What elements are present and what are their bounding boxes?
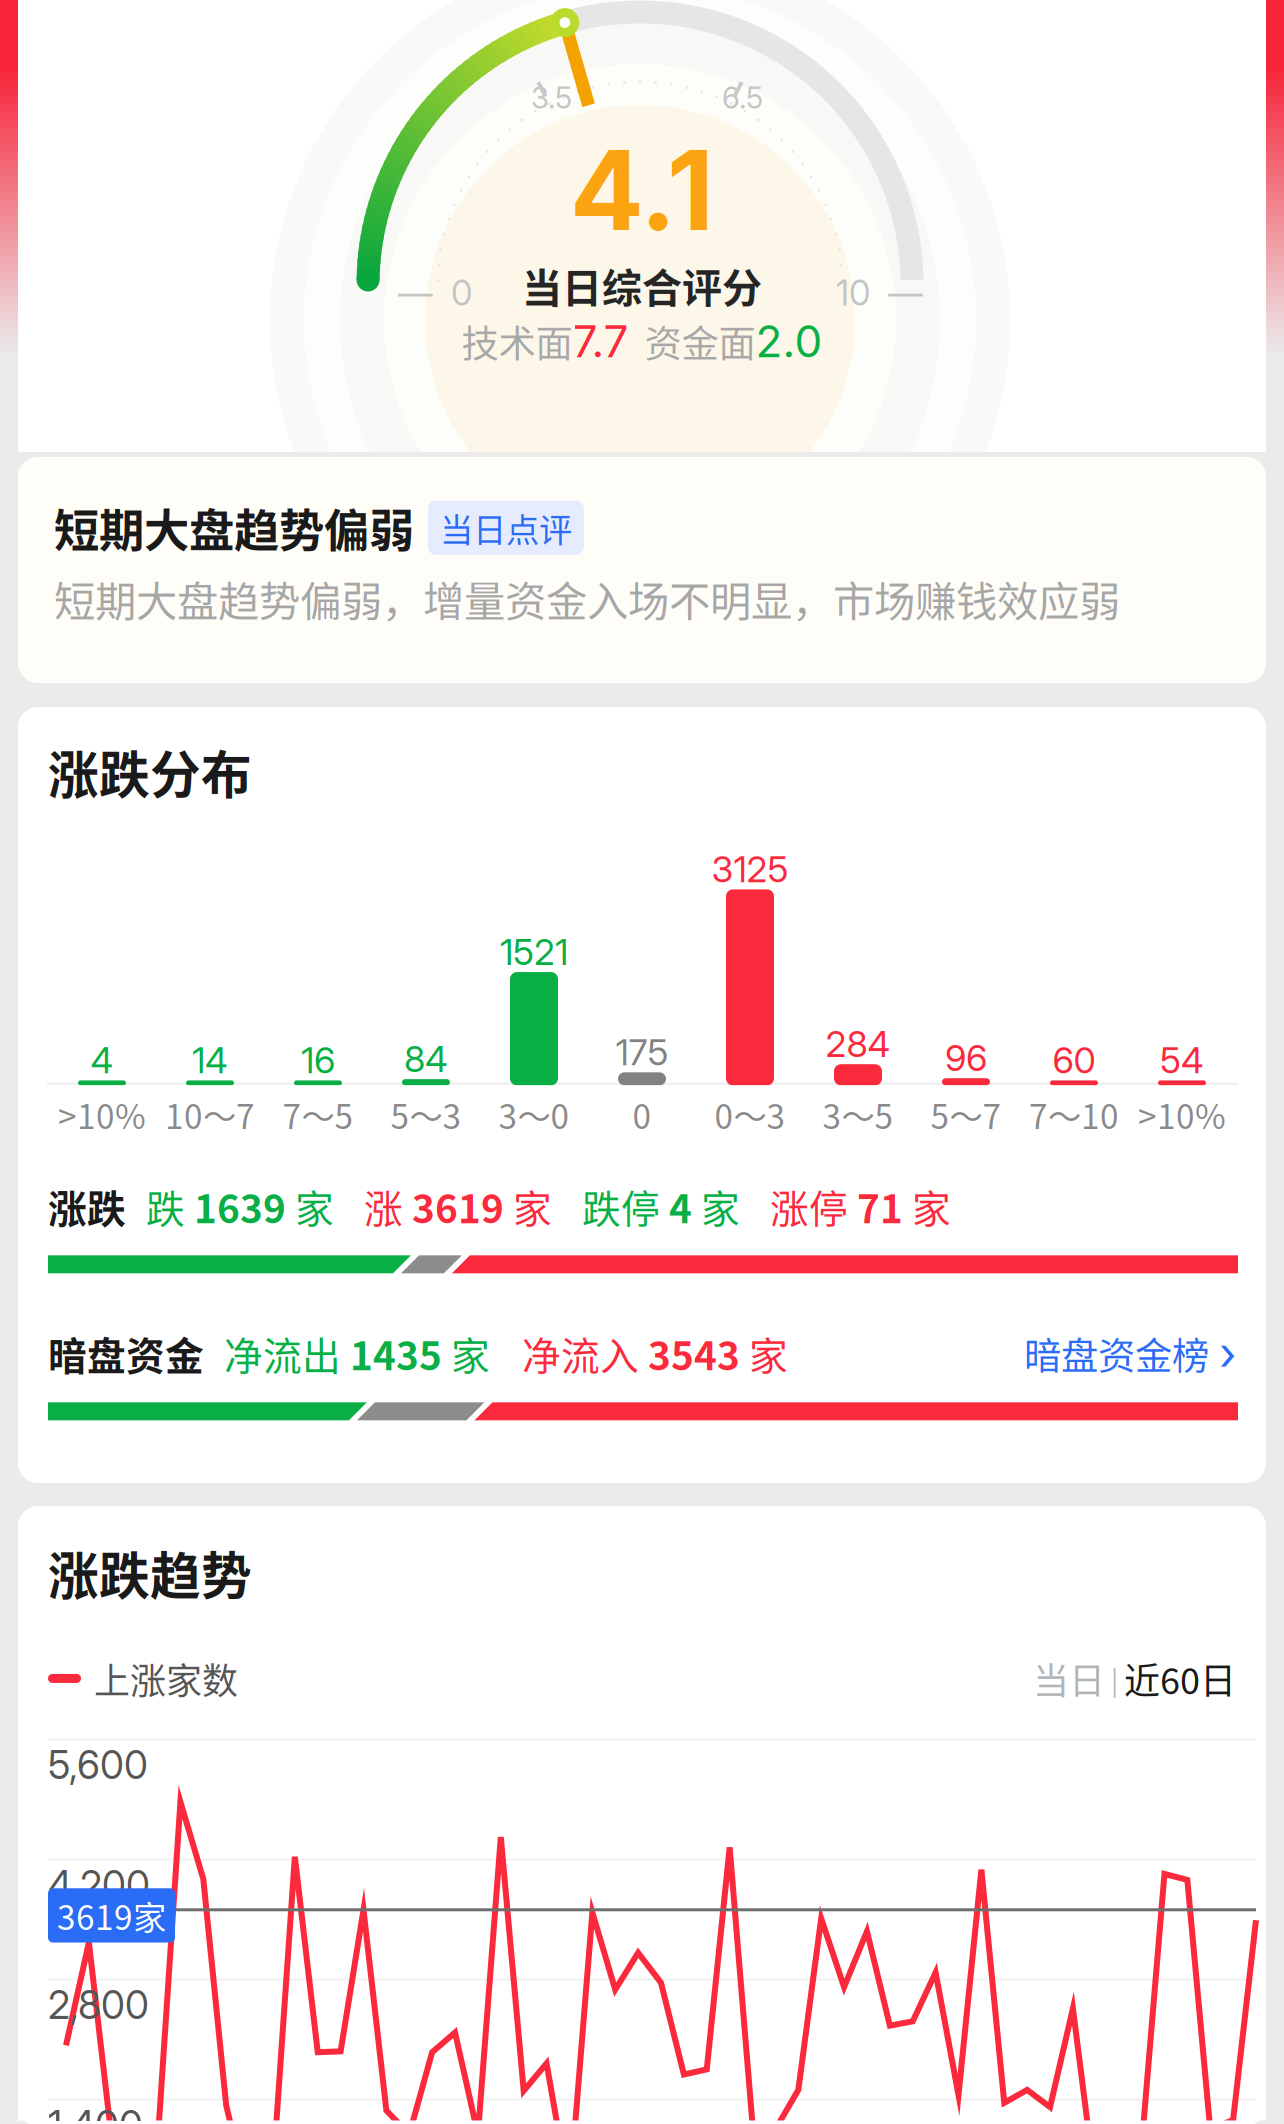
staticText: 家 <box>513 1178 552 1234</box>
button[interactable]: 暗盘资金榜 <box>1024 1326 1236 1381</box>
staticText: 技术面 <box>461 314 572 368</box>
staticText: 家 <box>295 1178 334 1234</box>
staticText: 5～7 <box>930 1090 1001 1139</box>
staticText: 跌停 <box>582 1178 660 1234</box>
staticText: — 0 <box>398 272 472 314</box>
staticText: 净流出 <box>224 1325 341 1381</box>
staticText: 1521 <box>500 930 568 974</box>
staticText: 3～5 <box>822 1090 893 1139</box>
staticText: 涨停 <box>770 1178 848 1234</box>
staticText: 涨跌 <box>48 1178 126 1234</box>
staticText: 上涨家数 <box>94 1652 238 1704</box>
staticText: 当日综合评分 <box>522 256 762 314</box>
staticText: 家 <box>451 1325 490 1381</box>
staticText: 5,600 <box>48 1741 148 1788</box>
button[interactable]: 近60日 <box>1124 1652 1236 1704</box>
staticText: 3543 <box>639 1325 749 1381</box>
staticText: 7.7 <box>572 315 628 368</box>
staticText: 284 <box>825 1022 890 1066</box>
staticText: 71 <box>848 1178 912 1234</box>
staticText: 0～3 <box>714 1090 785 1139</box>
staticText: 54 <box>1160 1038 1204 1082</box>
staticText: 跌 <box>146 1178 185 1234</box>
staticText: | <box>1105 1659 1124 1698</box>
staticText: 3619家 <box>57 1891 166 1940</box>
staticText: 涨跌趋势 <box>48 1536 252 1609</box>
staticText: 1435 <box>341 1325 451 1381</box>
staticText: 175 <box>615 1030 668 1074</box>
staticText: 3～0 <box>498 1090 569 1139</box>
staticText: 96 <box>945 1036 987 1080</box>
staticText: 7～5 <box>282 1090 353 1139</box>
staticText: 涨 <box>364 1178 403 1234</box>
staticText: 10 — <box>836 272 923 314</box>
staticText: 家 <box>749 1325 788 1381</box>
staticText: 6.5 <box>722 80 763 115</box>
staticText: 16 <box>301 1038 335 1082</box>
staticText: 短期大盘趋势偏弱 <box>54 495 414 561</box>
staticText: 暗盘资金 <box>48 1325 204 1381</box>
staticText: 涨跌分布 <box>48 735 252 808</box>
staticText: >10% <box>1138 1090 1226 1139</box>
staticText: 3.5 <box>531 80 572 115</box>
staticText: 4.1 <box>570 124 714 256</box>
staticText: 10～7 <box>165 1090 255 1139</box>
staticText: 当日点评 <box>440 504 572 552</box>
staticText: 4 <box>90 1038 113 1082</box>
staticText: 3619 <box>403 1178 513 1234</box>
staticText: 4,200 <box>48 1861 150 1908</box>
staticText: 1,400 <box>48 2101 143 2124</box>
staticText: >10% <box>58 1090 146 1139</box>
staticText: 2.0 <box>755 315 822 368</box>
staticText: 84 <box>404 1037 448 1081</box>
staticText: › <box>1219 1326 1236 1381</box>
staticText: 净流入 <box>522 1325 639 1381</box>
staticText: 当日 <box>1033 1652 1105 1704</box>
staticText: 家 <box>912 1178 951 1234</box>
button[interactable]: 当日 <box>1033 1652 1105 1704</box>
staticText: 1639 <box>185 1178 295 1234</box>
staticText: 短期大盘趋势偏弱，增量资金入场不明显，市场赚钱效应弱 <box>54 569 1120 628</box>
staticText: 暗盘资金榜 <box>1024 1326 1209 1380</box>
staticText: 近60日 <box>1124 1652 1236 1704</box>
staticText: 60 <box>1052 1038 1095 1082</box>
staticText: 14 <box>192 1038 228 1082</box>
staticText: 3125 <box>711 847 788 891</box>
staticText: 7～10 <box>1029 1090 1119 1139</box>
staticText: 家 <box>701 1178 740 1234</box>
staticText: 4 <box>660 1178 701 1234</box>
staticText: 5～3 <box>390 1090 461 1139</box>
staticText: 2,800 <box>48 1981 149 2028</box>
staticText: 0 <box>632 1090 651 1139</box>
staticText: 资金面 <box>644 314 755 368</box>
